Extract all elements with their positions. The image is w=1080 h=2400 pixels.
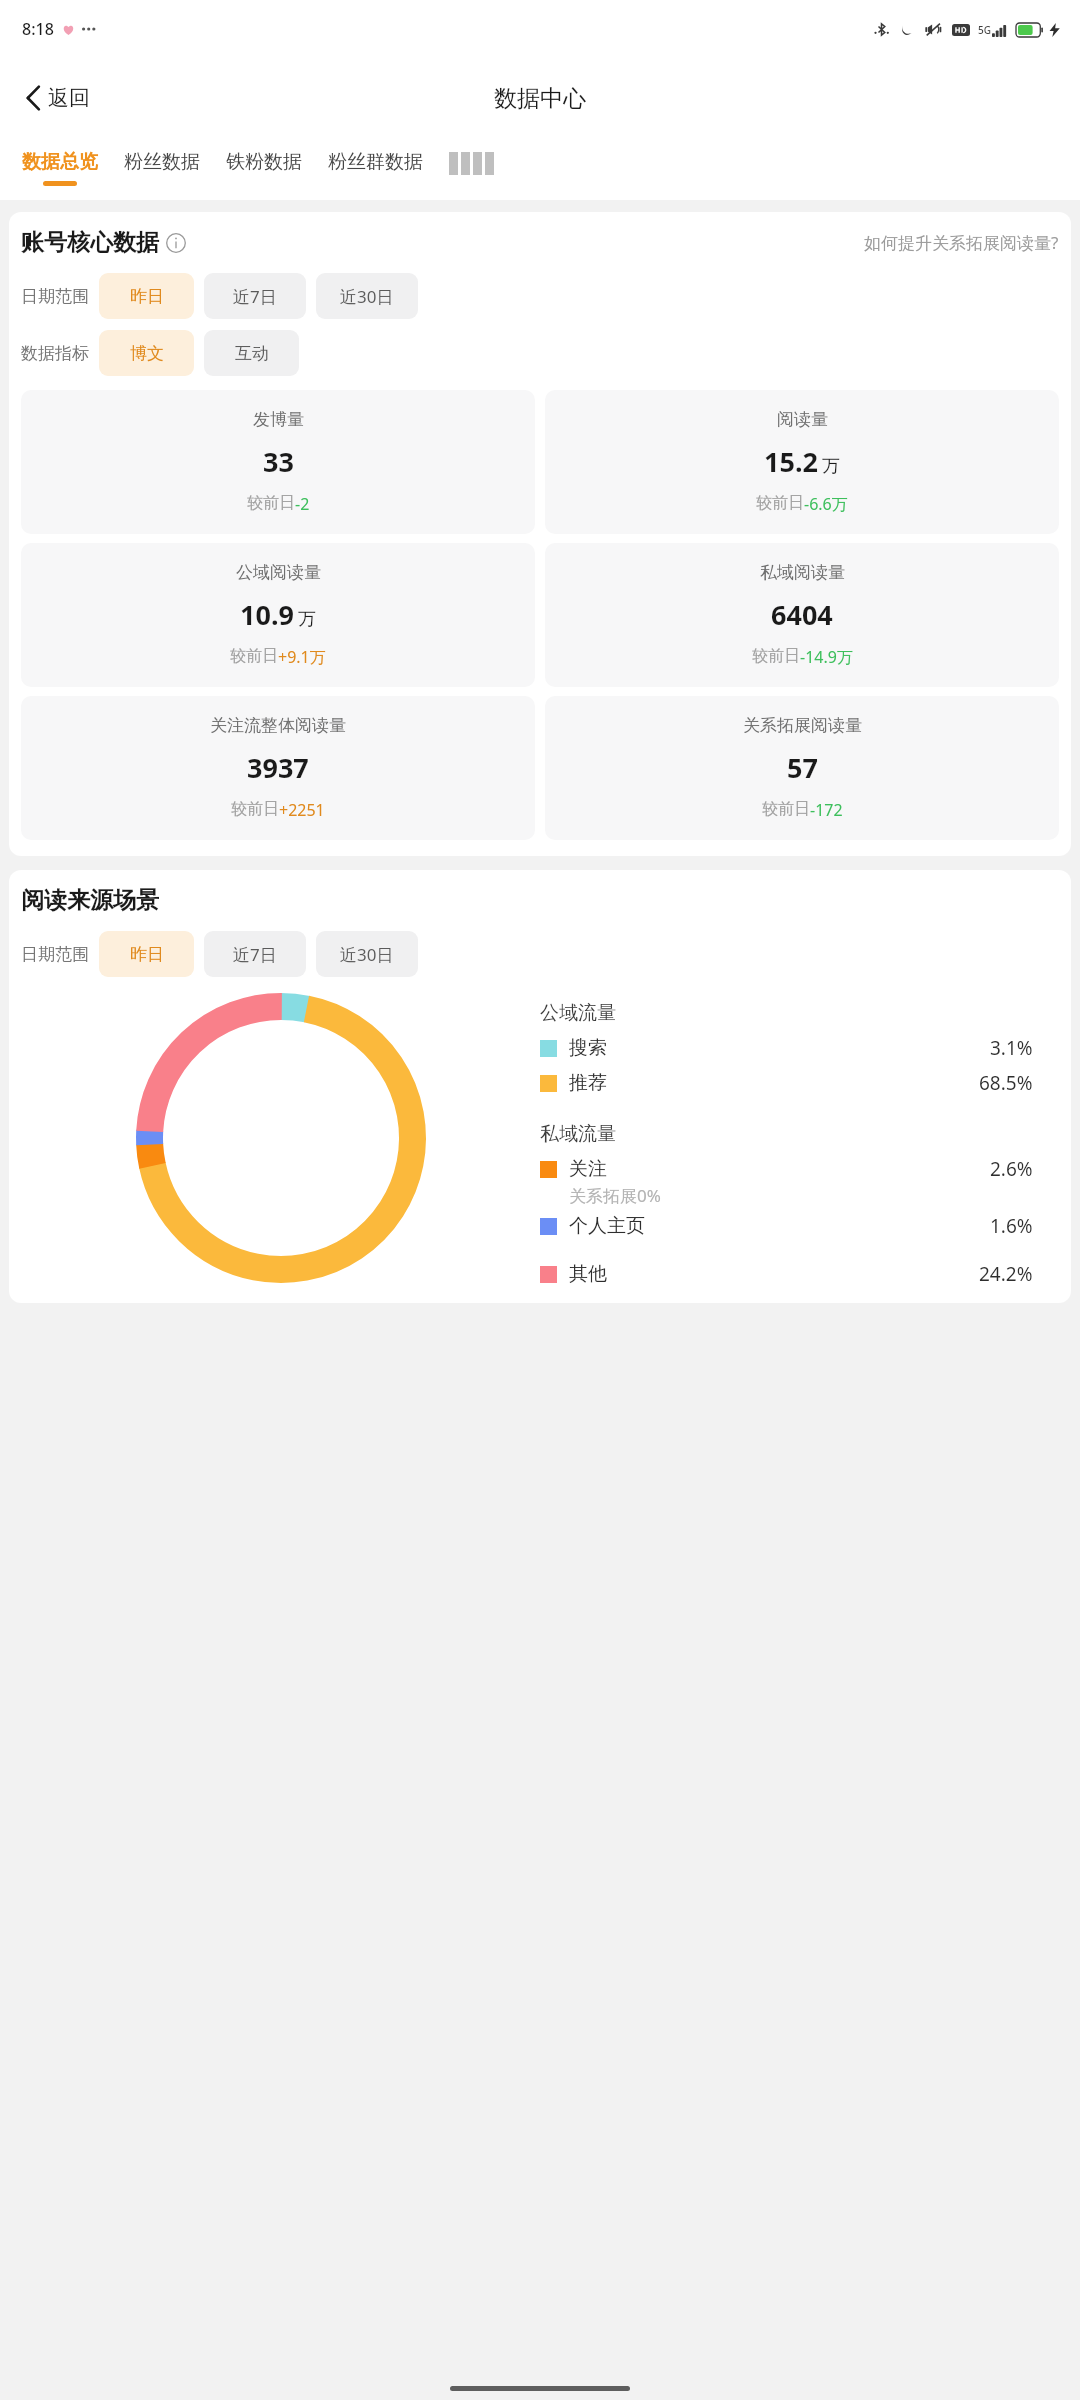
button[interactable]: 公域阅读量	[21, 543, 535, 687]
staticText: 推荐	[569, 1071, 607, 1095]
staticText: 关系拓展0%	[569, 1184, 661, 1207]
staticText: 68.5%	[979, 1070, 1033, 1096]
staticText: 1.6%	[990, 1213, 1033, 1239]
staticText: 较前日	[247, 493, 295, 513]
staticText: 关注	[569, 1157, 607, 1181]
staticText: 数据总览	[22, 150, 98, 174]
button[interactable]: 互动	[204, 330, 299, 376]
button[interactable]: 阅读量	[545, 390, 1059, 534]
staticText: 3.1%	[990, 1035, 1033, 1061]
button[interactable]: 返回	[18, 79, 98, 117]
staticText: 较前日	[762, 799, 810, 819]
staticText: 33	[263, 443, 294, 480]
staticText: 数据指标	[21, 343, 89, 364]
staticText: 阅读量	[777, 409, 828, 430]
staticText: +2251	[279, 799, 325, 821]
button[interactable]: 近30日	[316, 273, 418, 319]
staticText: 铁粉数据	[226, 150, 302, 174]
staticText: 较前日	[231, 799, 279, 819]
button[interactable]: 粉丝群数据	[328, 138, 423, 181]
staticText: 近30日	[340, 285, 394, 308]
staticText: 公域阅读量	[236, 562, 321, 583]
button[interactable]: 近30日	[316, 931, 418, 977]
staticText: 发博量	[253, 409, 304, 430]
staticText: 较前日	[230, 646, 278, 666]
staticText: 万	[822, 455, 840, 478]
staticText: -14.9万	[800, 646, 853, 668]
staticText: 较前日	[756, 493, 804, 513]
button[interactable]	[449, 152, 497, 175]
button[interactable]: 昨日	[99, 273, 194, 319]
button[interactable]: 博文	[99, 330, 194, 376]
staticText: 搜索	[569, 1036, 607, 1060]
staticText: 万	[298, 608, 316, 631]
staticText: 个人主页	[569, 1214, 645, 1238]
staticText: 数据中心	[494, 84, 586, 113]
staticText: 15.2	[764, 443, 818, 480]
staticText: 公域流量	[540, 1001, 616, 1025]
staticText: 6404	[771, 596, 833, 633]
staticText: 57	[787, 749, 818, 786]
button[interactable]: 昨日	[99, 931, 194, 977]
button[interactable]: 近7日	[204, 931, 306, 977]
staticText: 5G	[978, 23, 991, 37]
staticText: 10.9	[240, 596, 294, 633]
button[interactable]: 如何提升关系拓展阅读量?	[864, 231, 1059, 254]
staticText: 返回	[48, 85, 90, 111]
staticText: 互动	[235, 343, 269, 364]
button[interactable]: 数据总览	[22, 138, 98, 186]
staticText: 8:18	[22, 18, 54, 40]
staticText: 日期范围	[21, 944, 89, 965]
staticText: -2	[295, 493, 310, 515]
staticText: -172	[810, 799, 843, 821]
staticText: 日期范围	[21, 286, 89, 307]
staticText: 3937	[247, 749, 309, 786]
staticText: 近30日	[340, 943, 394, 966]
staticText: 近7日	[233, 285, 277, 308]
staticText: 博文	[130, 343, 164, 364]
button[interactable]: 关系拓展阅读量	[545, 696, 1059, 840]
staticText: -6.6万	[804, 493, 848, 515]
staticText: 近7日	[233, 943, 277, 966]
button[interactable]: 私域阅读量	[545, 543, 1059, 687]
staticText: 粉丝群数据	[328, 150, 423, 174]
staticText: 私域阅读量	[760, 562, 845, 583]
button[interactable]: 关注流整体阅读量	[21, 696, 535, 840]
staticText: 昨日	[130, 286, 164, 307]
staticText: 私域流量	[540, 1122, 616, 1146]
staticText: 2.6%	[990, 1156, 1033, 1182]
button[interactable]: 近7日	[204, 273, 306, 319]
staticText: 粉丝数据	[124, 150, 200, 174]
button[interactable]: 粉丝数据	[124, 138, 200, 181]
staticText: 关注流整体阅读量	[210, 715, 346, 736]
button[interactable]: 说明	[166, 233, 186, 253]
staticText: 阅读来源场景	[21, 886, 159, 915]
staticText: 昨日	[130, 944, 164, 965]
button[interactable]: 发博量	[21, 390, 535, 534]
staticText: 其他	[569, 1262, 607, 1286]
button[interactable]: 铁粉数据	[226, 138, 302, 181]
staticText: 24.2%	[979, 1261, 1033, 1287]
staticText: +9.1万	[278, 646, 326, 668]
staticText: 账号核心数据	[21, 228, 159, 257]
staticText: 关系拓展阅读量	[743, 715, 862, 736]
staticText: 较前日	[752, 646, 800, 666]
